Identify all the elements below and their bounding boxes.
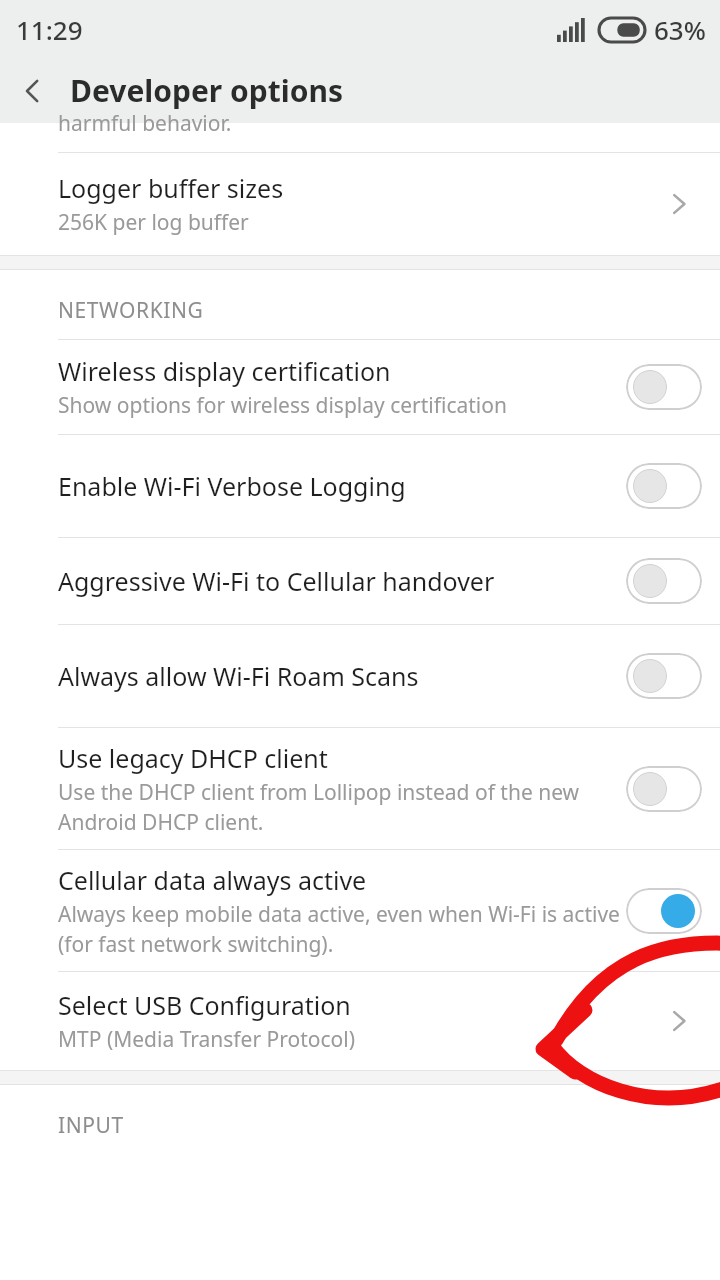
staticText: 63% [654,12,706,47]
staticText: 256K per log buffer [58,208,249,237]
staticText: Always allow Wi-Fi Roam Scans [58,659,419,693]
staticText: Developer options [70,70,344,111]
button[interactable]: Wireless display certification [0,340,720,434]
button[interactable]: Always allow Wi-Fi Roam Scans [0,625,720,727]
staticText: Cellular data always active [58,863,367,897]
staticText: INPUT [58,1111,124,1140]
button[interactable]: Back [0,58,66,123]
staticText: Wireless display certification [58,354,391,388]
staticText: Select USB Configuration [58,988,351,1022]
staticText: Aggressive Wi-Fi to Cellular handover [58,564,495,598]
staticText: Logger buffer sizes [58,171,284,205]
button[interactable]: Cellular data always active [0,850,720,971]
staticText: Use the DHCP client from Lollipop instea… [58,778,618,836]
staticText: Enable Wi-Fi Verbose Logging [58,469,406,503]
staticText: harmful behavior. [58,109,232,138]
staticText: MTP (Media Transfer Protocol) [58,1025,356,1054]
button[interactable]: Enable Wi-Fi Verbose Logging [0,435,720,537]
button[interactable]: Logger buffer sizes [0,153,720,255]
staticText: 11:29 [16,12,83,47]
staticText: Show options for wireless display certif… [58,391,507,420]
staticText: Use legacy DHCP client [58,741,328,775]
button[interactable]: Use legacy DHCP client [0,728,720,849]
staticText: Always keep mobile data active, even whe… [58,900,620,958]
button[interactable]: Select USB Configuration [0,972,720,1070]
staticText: NETWORKING [58,296,204,325]
button[interactable]: Aggressive Wi-Fi to Cellular handover [0,538,720,624]
